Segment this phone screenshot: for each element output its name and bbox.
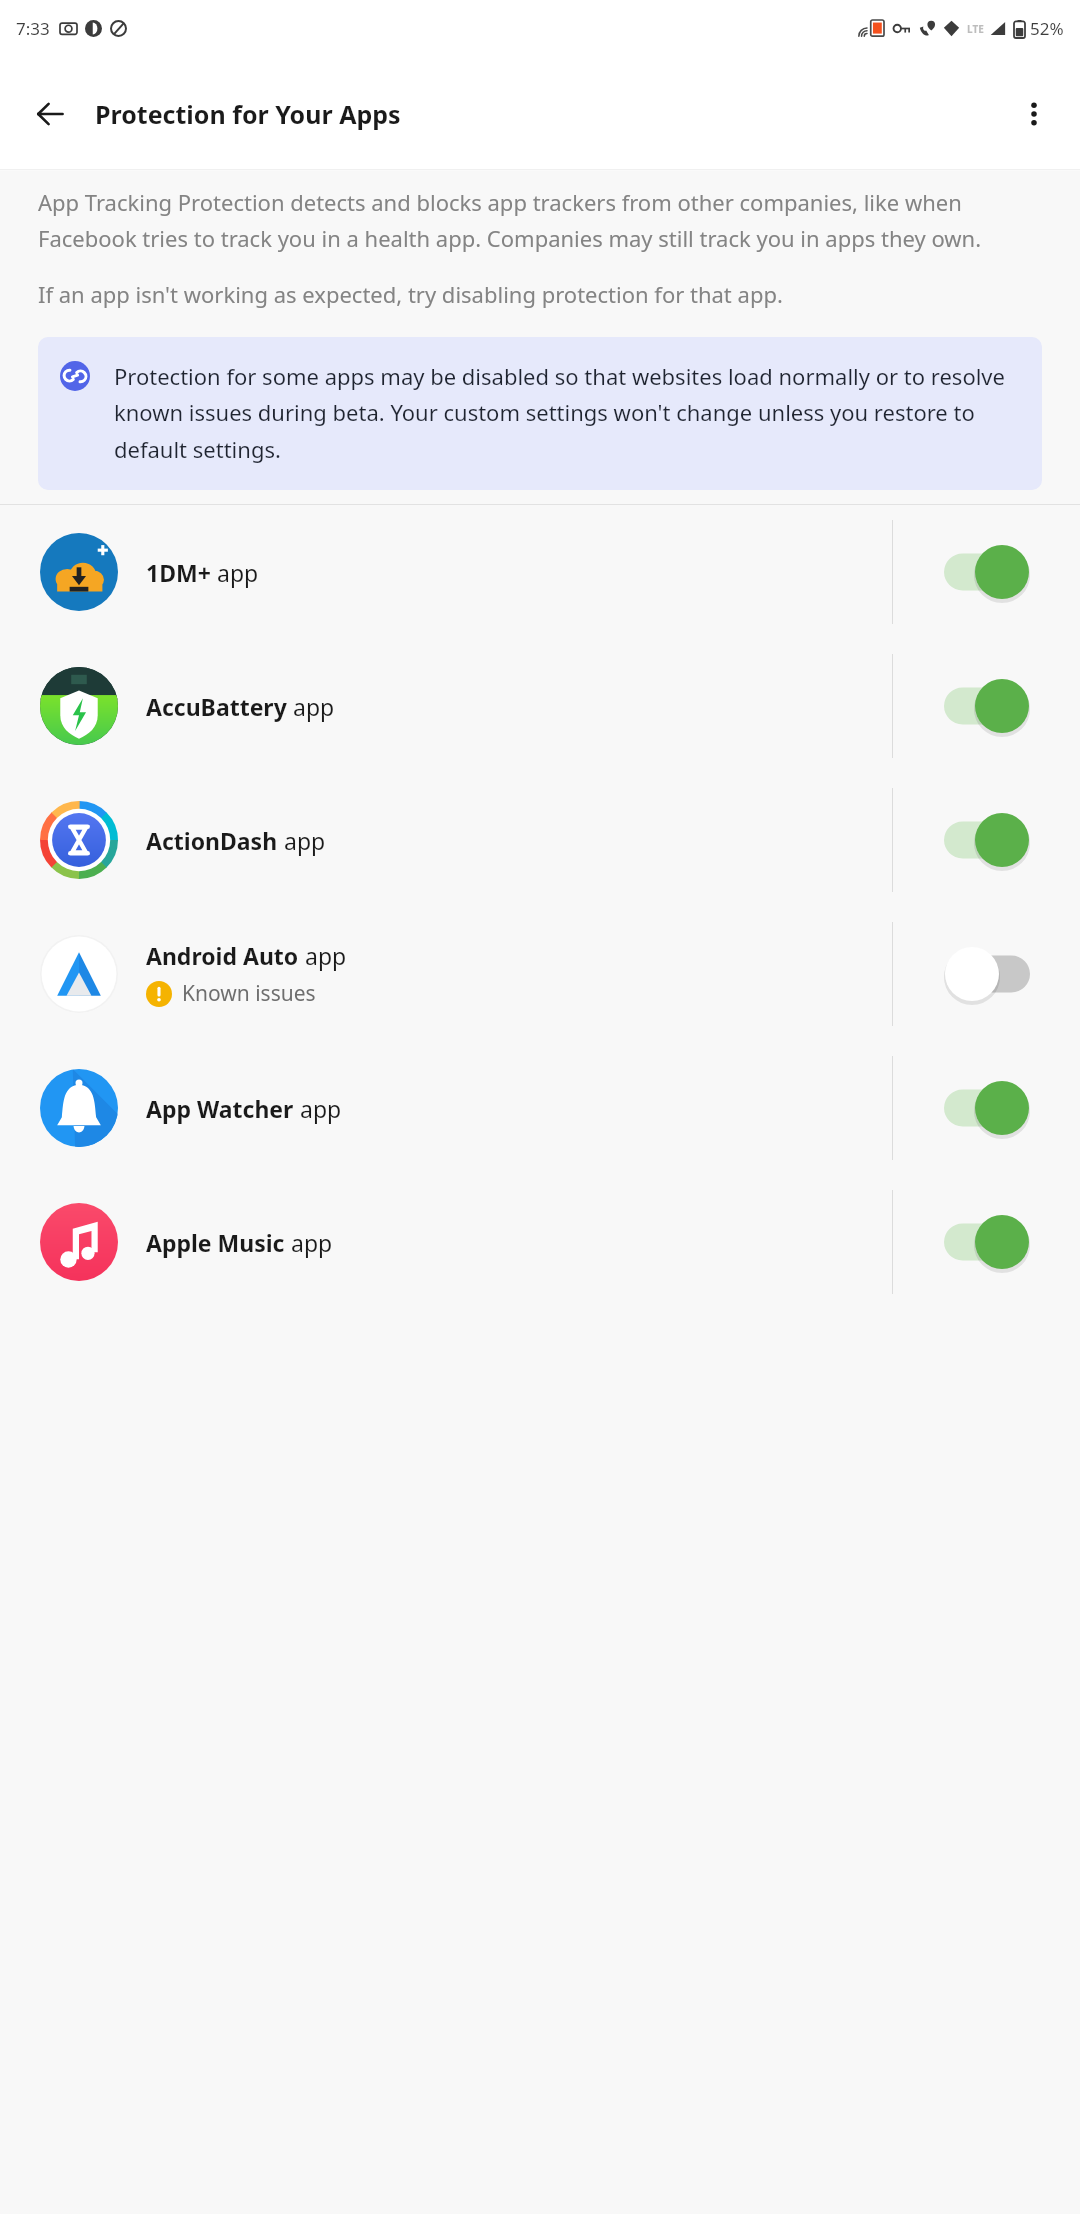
button[interactable]: Protection for some apps may be disabled… [38, 337, 1042, 490]
staticText: Known issues [182, 979, 316, 1008]
button[interactable]: Back [22, 86, 78, 142]
button[interactable]: Disable protection [893, 639, 1080, 773]
staticText: app [287, 691, 335, 722]
staticText: Protection for Your Apps [95, 97, 401, 131]
staticText: 1DM+ [146, 557, 211, 588]
staticText: AccuBattery [146, 691, 287, 722]
button[interactable]: 1DM+ [0, 505, 1080, 639]
button[interactable]: Apple Music [0, 1175, 1080, 1309]
staticText: If an app isn't working as expected, try… [38, 279, 783, 309]
button[interactable]: Disable protection [893, 505, 1080, 639]
button[interactable]: Disable protection [893, 1041, 1080, 1175]
staticText: LTE [967, 22, 984, 36]
staticText: app [211, 557, 259, 588]
staticText: App Tracking Protection detects and bloc… [38, 187, 1042, 253]
button[interactable]: ActionDash [0, 773, 1080, 907]
button[interactable]: AccuBattery [0, 639, 1080, 773]
button[interactable]: Android Auto [0, 907, 1080, 1041]
staticText: Android Auto [146, 940, 299, 971]
staticText: 7:33 [16, 17, 50, 40]
staticText: Protection for some apps may be disabled… [114, 361, 1020, 464]
staticText: Apple Music [146, 1227, 285, 1258]
staticText: app [294, 1093, 342, 1124]
staticText: ActionDash [146, 825, 278, 856]
staticText: App Watcher [146, 1093, 294, 1124]
button[interactable]: App Watcher [0, 1041, 1080, 1175]
button[interactable]: Disable protection [893, 773, 1080, 907]
button[interactable]: Disable protection [893, 1175, 1080, 1309]
staticText: app [299, 940, 347, 971]
button[interactable]: More options [1006, 86, 1062, 142]
staticText: app [285, 1227, 333, 1258]
staticText: 52% [1030, 17, 1064, 40]
staticText: app [278, 825, 326, 856]
button[interactable]: Enable protection [893, 907, 1080, 1041]
